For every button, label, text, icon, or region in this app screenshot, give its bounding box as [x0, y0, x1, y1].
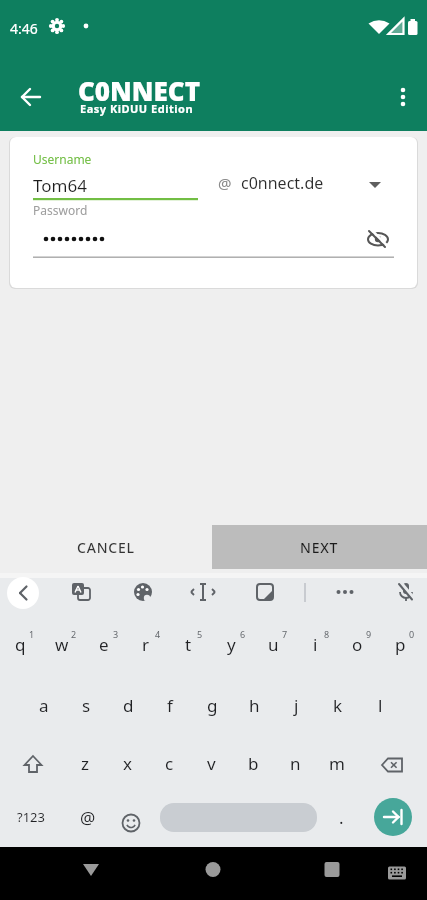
staticText: v — [207, 752, 216, 775]
staticText: CANCEL — [77, 538, 135, 557]
button[interactable] — [61, 574, 101, 610]
staticText: e — [99, 633, 109, 656]
button[interactable]: i — [295, 618, 335, 670]
staticText: d — [123, 694, 134, 717]
staticText: q — [15, 633, 26, 656]
button[interactable]: r — [126, 618, 166, 670]
button[interactable] — [33, 222, 363, 255]
staticText: 4 — [155, 628, 161, 640]
staticText: s — [82, 694, 91, 717]
button[interactable] — [67, 847, 115, 900]
staticText: C0NNECT — [78, 73, 200, 108]
button[interactable] — [111, 791, 151, 843]
button[interactable] — [368, 737, 416, 789]
button[interactable]: l — [360, 679, 400, 731]
button[interactable] — [308, 847, 356, 900]
staticText: m — [329, 752, 345, 775]
button[interactable] — [374, 798, 412, 836]
staticText: Tom64 — [33, 174, 87, 197]
button[interactable]: y — [211, 618, 251, 670]
staticText: c0nnect.de — [241, 172, 324, 194]
staticText: 5 — [197, 628, 203, 640]
button[interactable] — [325, 574, 365, 610]
staticText: 0 — [409, 628, 415, 640]
button[interactable] — [362, 223, 394, 255]
staticText: @ — [80, 806, 96, 829]
staticText: b — [248, 752, 259, 775]
button[interactable] — [123, 574, 163, 610]
staticText: . — [339, 806, 344, 829]
staticText: j — [294, 694, 299, 717]
button[interactable]: a — [24, 679, 64, 731]
button[interactable]: h — [234, 679, 274, 731]
staticText: 3 — [113, 628, 119, 640]
staticText: u — [268, 633, 279, 656]
staticText: l — [378, 694, 383, 717]
button[interactable]: o — [337, 618, 377, 670]
staticText: i — [313, 633, 318, 656]
button[interactable] — [7, 577, 39, 609]
button[interactable]: x — [107, 737, 147, 789]
staticText: 2 — [71, 628, 77, 640]
button[interactable]: z — [65, 737, 105, 789]
button[interactable] — [189, 847, 237, 900]
button[interactable]: m — [317, 737, 357, 789]
button[interactable]: ?123 — [8, 791, 54, 843]
staticText: 6 — [240, 628, 246, 640]
button[interactable]: q — [0, 618, 40, 670]
button[interactable]: f — [150, 679, 190, 731]
button[interactable]: c — [149, 737, 189, 789]
button[interactable]: s — [66, 679, 106, 731]
button[interactable]: e — [84, 618, 124, 670]
button[interactable]: p — [380, 618, 420, 670]
staticText: 1 — [29, 628, 35, 640]
staticText: w — [55, 633, 69, 656]
button[interactable]: k — [318, 679, 358, 731]
button[interactable]: u — [253, 618, 293, 670]
staticText: h — [249, 694, 260, 717]
staticText: o — [352, 633, 363, 656]
staticText: 9 — [366, 628, 372, 640]
button[interactable]: n — [275, 737, 315, 789]
button[interactable] — [245, 574, 285, 610]
staticText: p — [395, 633, 406, 656]
button[interactable]: @ — [68, 791, 108, 843]
staticText: c — [165, 752, 174, 775]
button[interactable]: b — [233, 737, 273, 789]
button[interactable] — [9, 737, 57, 789]
staticText: y — [227, 633, 236, 656]
button[interactable]: d — [108, 679, 148, 731]
button[interactable] — [386, 574, 426, 610]
staticText: 8 — [324, 628, 330, 640]
staticText: g — [207, 694, 218, 717]
staticText: Easy KiDUU Edition — [80, 101, 194, 116]
staticText: ?123 — [17, 808, 45, 826]
button[interactable]: CANCEL — [0, 525, 212, 569]
button[interactable]: NEXT — [212, 525, 427, 569]
button[interactable]: j — [276, 679, 316, 731]
staticText: NEXT — [300, 538, 339, 557]
staticText: Password — [33, 202, 88, 218]
button[interactable]: . — [321, 791, 361, 843]
staticText: @ — [218, 173, 232, 193]
staticText: 4:46 — [10, 19, 38, 38]
staticText: t — [185, 633, 192, 656]
button[interactable]: g — [192, 679, 232, 731]
button[interactable] — [183, 574, 223, 610]
button[interactable]: @ — [205, 167, 400, 199]
button[interactable]: w — [42, 618, 82, 670]
button[interactable]: v — [191, 737, 231, 789]
staticText: x — [123, 752, 132, 775]
button[interactable] — [379, 847, 419, 900]
button[interactable] — [379, 73, 427, 121]
staticText: f — [167, 694, 173, 717]
staticText: a — [39, 694, 49, 717]
button[interactable] — [160, 803, 317, 832]
staticText: z — [81, 752, 89, 775]
button[interactable]: Tom64 — [33, 169, 208, 199]
button[interactable]: t — [168, 618, 208, 670]
staticText: Username — [33, 151, 92, 167]
button[interactable] — [7, 73, 55, 121]
staticText: n — [290, 752, 301, 775]
staticText: 7 — [282, 628, 288, 640]
